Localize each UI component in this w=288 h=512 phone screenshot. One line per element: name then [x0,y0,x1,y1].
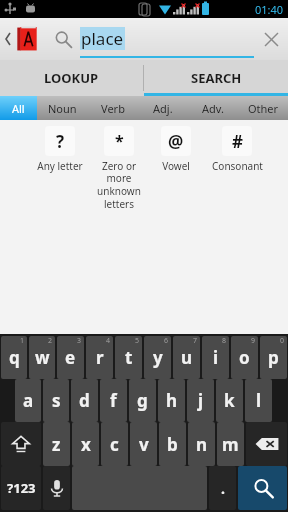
staticText: c [110,433,119,456]
button[interactable]: y [144,336,171,379]
button[interactable]: All [0,96,37,120]
staticText: 5 [135,336,140,346]
staticText: t [125,346,133,369]
staticText: LOOKUP [44,69,99,87]
staticText: All [12,101,25,116]
staticText: z [52,433,61,456]
staticText: 01:40 [255,2,284,17]
staticText: k [224,389,235,412]
button[interactable]: t [115,336,142,379]
staticText: place [81,27,124,50]
staticText: s [52,389,61,412]
button[interactable]: . [209,466,236,510]
staticText: Zero or more unknown letters [97,159,141,211]
button[interactable]: e [57,336,84,379]
staticText: a [23,389,34,412]
staticText: u [181,346,193,369]
button[interactable]: SEARCH [144,60,288,96]
button[interactable]: Delete [246,422,287,466]
button[interactable]: o [231,336,258,379]
staticText: q [9,346,20,369]
staticText: Consonant [212,159,263,173]
staticText: 2 [48,336,53,346]
button[interactable]: r [86,336,113,379]
button[interactable]: q [1,336,27,379]
staticText: Verb [101,101,125,116]
button[interactable]: @ [148,126,204,173]
button[interactable]: l [245,379,272,422]
button[interactable]: f [100,379,127,422]
staticText: SEARCH [191,69,242,87]
button[interactable]: * [90,126,148,211]
button[interactable]: c [101,422,128,466]
staticText: 6 [164,336,169,346]
button[interactable]: w [29,336,55,379]
button[interactable]: n [188,422,215,466]
staticText: 7 [193,336,198,346]
button[interactable]: p [260,336,287,379]
button[interactable]: LOOKUP [0,60,143,96]
staticText: r [96,346,104,369]
button[interactable]: v [130,422,157,466]
button[interactable]: m [217,422,244,466]
staticText: 8 [222,336,227,346]
button[interactable]: ?123 [1,466,41,510]
staticText: Vowel [162,159,190,173]
button[interactable]: Voice input [43,466,70,510]
button[interactable]: h [158,379,185,422]
button[interactable]: j [187,379,214,422]
other: Search [54,30,72,48]
button[interactable]: place [80,18,254,60]
staticText: 9 [251,336,256,346]
staticText: Other [248,101,279,116]
staticText: Any letter [37,159,83,173]
staticText: j [198,389,204,412]
staticText: i [213,346,219,369]
button[interactable]: s [43,379,69,422]
button[interactable]: Verb [88,96,138,120]
button[interactable]: ? [30,126,90,173]
button[interactable]: Adv. [188,96,238,120]
staticText: n [196,433,208,456]
staticText: m [222,433,239,456]
staticText: d [79,389,90,412]
button[interactable]: k [216,379,243,422]
button[interactable]: i [202,336,229,379]
button[interactable]: Up [0,18,44,60]
button[interactable]: b [159,422,186,466]
staticText: b [167,433,178,456]
button[interactable]: a [15,379,41,422]
staticText: p [268,346,279,369]
staticText: x [81,433,91,456]
staticText: ?123 [7,479,36,497]
staticText: . [221,479,225,498]
staticText: 1 [20,336,25,346]
staticText: 4 [106,336,111,346]
button[interactable]: Search [238,466,287,510]
button[interactable]: Adj. [138,96,188,120]
button[interactable]: Noun [37,96,88,120]
button[interactable]: # [204,126,270,173]
staticText: g [137,389,148,412]
staticText: w [35,346,50,369]
staticText: h [166,389,178,412]
staticText: # [232,130,243,153]
staticText: * [115,130,124,152]
button[interactable]: u [173,336,200,379]
staticText: f [110,389,117,412]
staticText: y [153,346,163,369]
button[interactable]: x [72,422,99,466]
button[interactable]: Shift [1,422,41,466]
staticText: 3 [77,336,82,346]
button[interactable]: Other [238,96,288,120]
staticText: v [139,433,149,456]
staticText: Adv. [202,101,224,116]
staticText: o [239,346,250,369]
staticText: 0 [280,336,285,346]
staticText: Noun [48,101,77,116]
button[interactable]: z [43,422,70,466]
button[interactable]: d [71,379,98,422]
button[interactable]: Clear query [254,22,288,56]
button[interactable]: g [129,379,156,422]
